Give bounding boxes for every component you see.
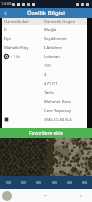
button[interactable]: Navigation item 2: [16, 176, 30, 189]
button[interactable]: İlçe: [2, 34, 87, 43]
staticText: Muğla: [44, 27, 57, 33]
button[interactable]: Navigation item 4: [47, 176, 61, 189]
staticText: Mahalle/Köy: [4, 45, 29, 51]
staticText: Özellik Bilgisi: [27, 9, 65, 17]
staticText: Cem Yaşarsoy: [44, 108, 72, 114]
button[interactable]: 101: [2, 61, 87, 70]
staticText: İ.Atlıdere: [44, 45, 62, 51]
staticText: 36Đ+O+BI B-4: [44, 117, 72, 123]
staticText: Tarla: [44, 90, 54, 96]
staticText: Öznitelik Adı: [4, 19, 42, 25]
staticText: 4: [44, 72, 47, 78]
button[interactable]: 4: [2, 70, 87, 79]
button[interactable]: Mahalle/Köy: [2, 43, 87, 52]
button[interactable]: Navigation item 3: [31, 176, 45, 189]
button[interactable]: Tarla: [2, 88, 87, 97]
staticText: 101: [44, 63, 52, 69]
button[interactable]: Mehmet Kara: [2, 97, 87, 106]
staticText: Mehmet Kara: [44, 99, 71, 105]
staticText: Favorilere ekle: [29, 130, 64, 137]
button[interactable]: İl: [2, 25, 87, 34]
staticText: < 1 kb: [10, 54, 21, 59]
button[interactable]: Navigation item 5: [62, 176, 76, 189]
staticText: Lokman: [44, 54, 60, 60]
button[interactable]: < 1 kb: [2, 52, 87, 61]
staticText: 14:06: [1, 1, 12, 7]
button[interactable]: Back: [0, 8, 10, 18]
button[interactable]: Cem Yaşarsoy: [2, 106, 87, 115]
staticText: Seydikemer: [44, 36, 67, 42]
button[interactable]: Navigation item 1: [1, 176, 15, 189]
button[interactable]: Favorilere ekle: [0, 128, 92, 138]
button[interactable]: Navigation item 6: [77, 176, 91, 189]
staticText: İlçe: [4, 36, 11, 42]
staticText: İl: [4, 27, 7, 33]
staticText: 4717/1: [44, 81, 58, 87]
button[interactable]: 36Đ+O+BI B-4: [2, 115, 87, 124]
staticText: Öznitelik Değeri: [44, 19, 76, 25]
button[interactable]: 4717/1: [2, 79, 87, 88]
